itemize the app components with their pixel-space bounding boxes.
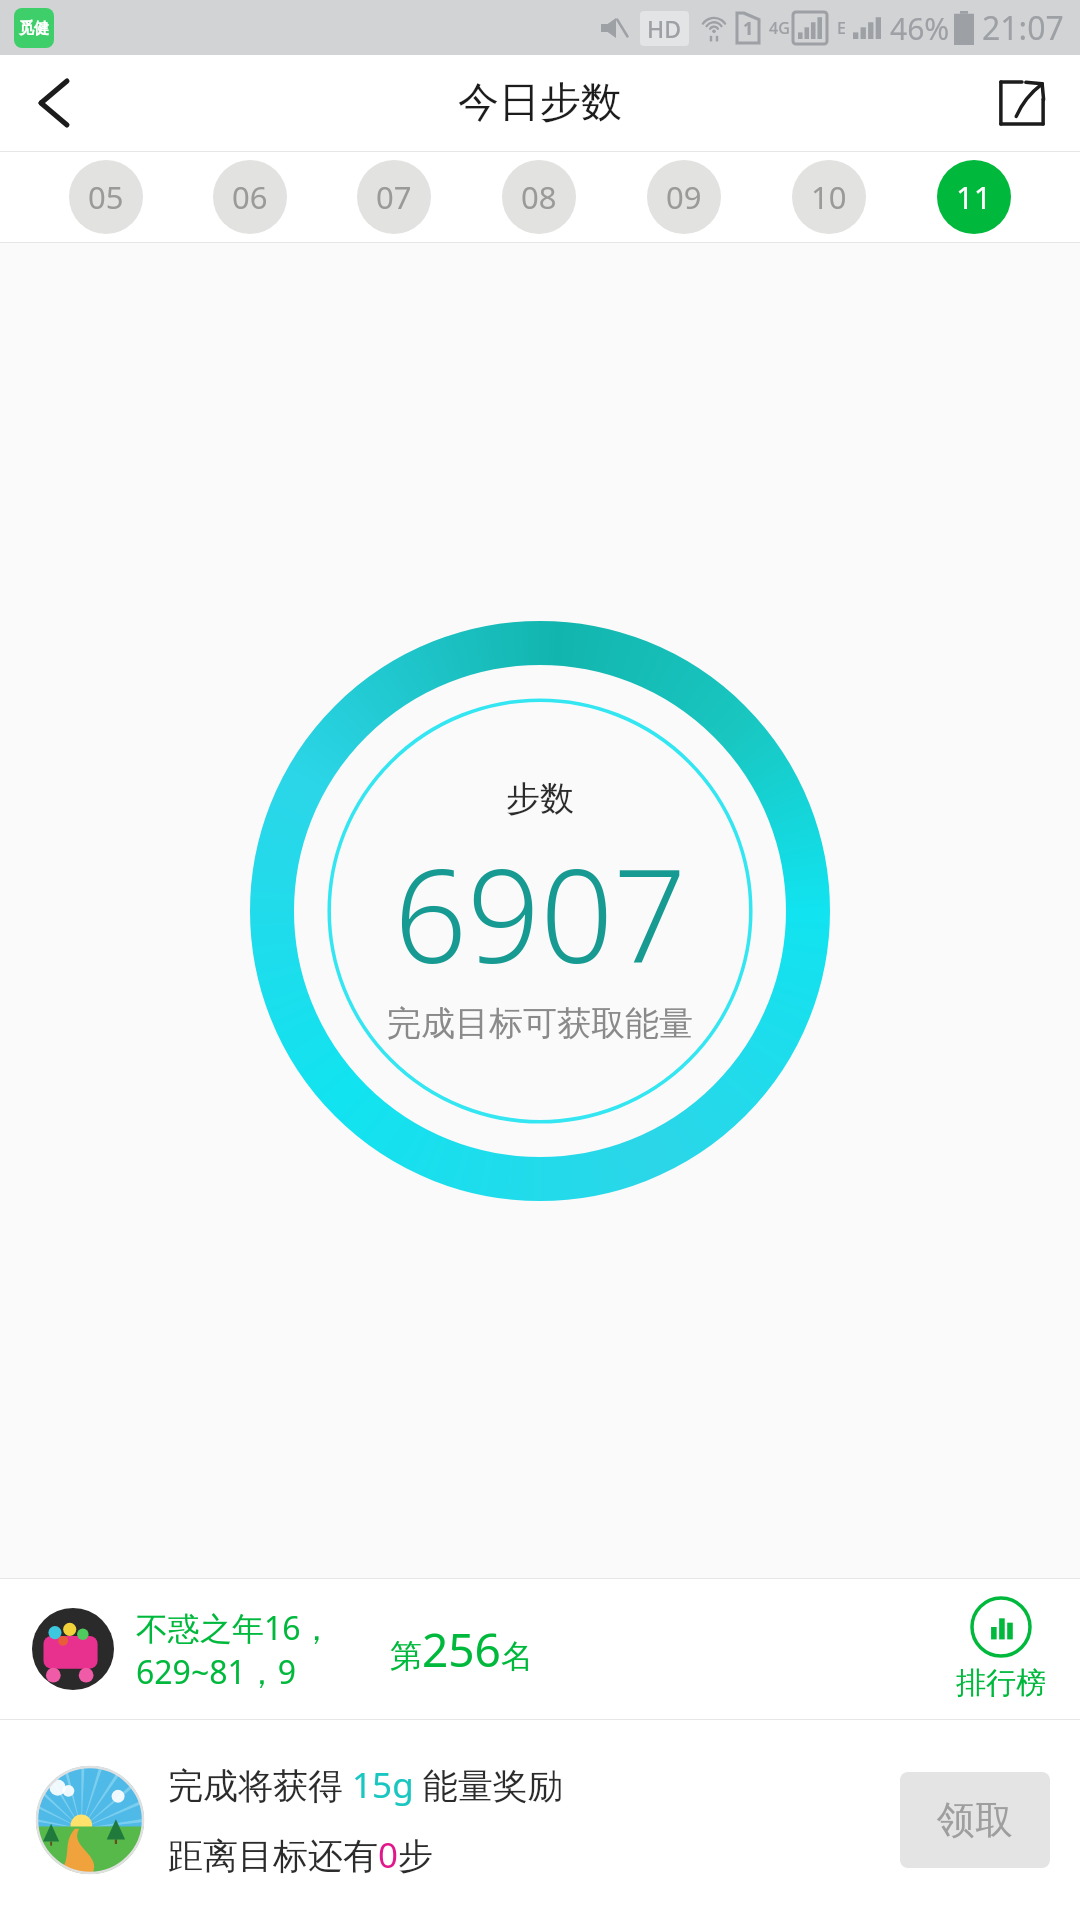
staticText: 不惑之年16，629~81，9 <box>136 1606 366 1693</box>
staticText: 1 <box>743 16 754 41</box>
staticText: 排行榜 <box>956 1664 1046 1702</box>
staticText: 10 <box>811 176 847 218</box>
staticText: 06 <box>232 176 268 218</box>
button[interactable]: 06 <box>213 160 287 234</box>
staticText: 21:07 <box>982 6 1064 50</box>
button[interactable]: 08 <box>502 160 576 234</box>
staticText: 完成目标可获取能量 <box>387 1002 693 1045</box>
staticText: 05 <box>88 176 124 218</box>
staticText: 08 <box>521 176 557 218</box>
staticText: 4G <box>769 17 790 39</box>
staticText: HD <box>647 13 682 44</box>
staticText: 第256名 <box>390 1618 533 1681</box>
button[interactable]: 10 <box>792 160 866 234</box>
staticText: 觅健 <box>19 19 49 38</box>
button[interactable]: 领取 <box>900 1772 1050 1868</box>
button[interactable]: Share <box>986 67 1058 139</box>
staticText: 6907 <box>394 826 687 1000</box>
staticText: 步数 <box>506 777 574 820</box>
button[interactable]: 09 <box>647 160 721 234</box>
button[interactable]: Back <box>18 67 90 139</box>
button[interactable]: 05 <box>69 160 143 234</box>
staticText: 领取 <box>937 1796 1013 1844</box>
staticText: 09 <box>666 176 702 218</box>
staticText: 距离目标还有0步 <box>168 1831 434 1879</box>
button[interactable]: 排行榜 <box>950 1590 1052 1708</box>
staticText: 今日步数 <box>458 77 622 129</box>
staticText: 46% <box>890 8 950 49</box>
staticText: 完成将获得 15g 能量奖励 <box>168 1761 563 1809</box>
staticText: 11 <box>956 176 992 218</box>
staticText: E <box>837 17 846 39</box>
button[interactable]: 不惑之年16，629~81，9 <box>0 1579 1080 1719</box>
button[interactable]: 11 <box>937 160 1011 234</box>
button[interactable]: 07 <box>357 160 431 234</box>
staticText: 07 <box>376 176 412 218</box>
